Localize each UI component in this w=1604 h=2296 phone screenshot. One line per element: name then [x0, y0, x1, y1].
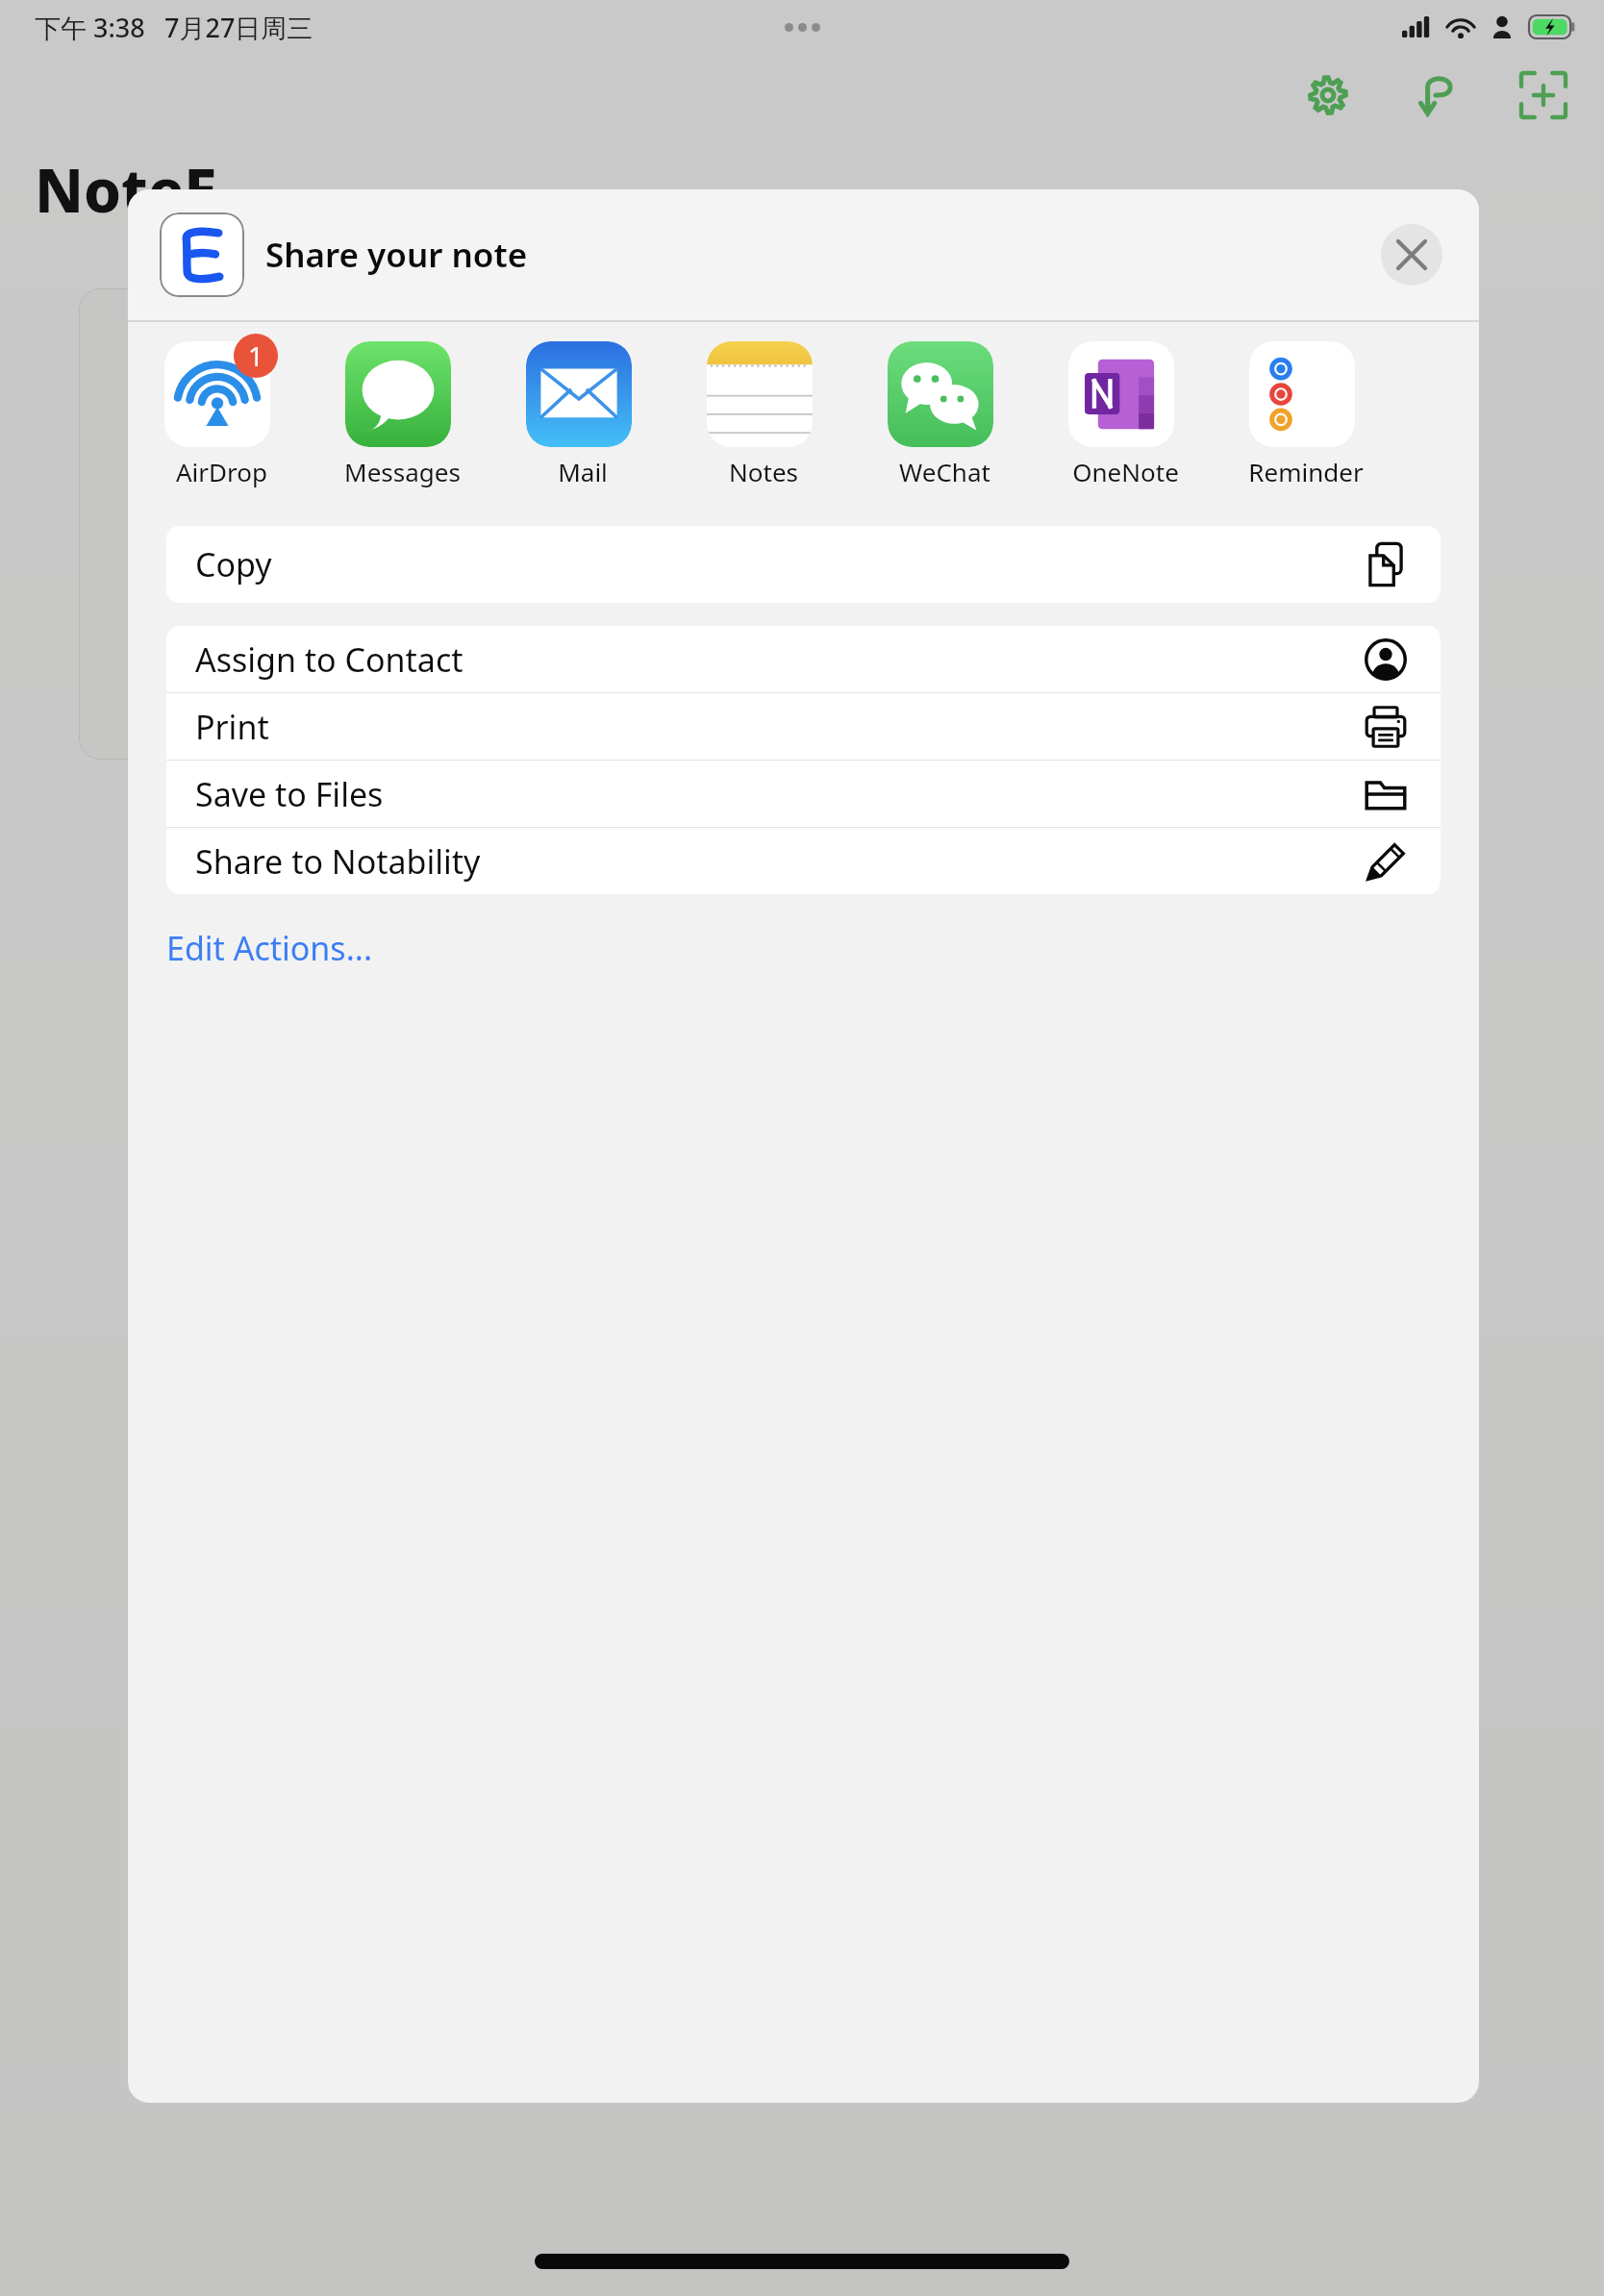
button[interactable]: Undo [1406, 65, 1466, 125]
button[interactable]: Share to Notability [166, 828, 1441, 894]
button[interactable]: Close [1381, 224, 1442, 286]
staticText: Edit Actions... [166, 926, 372, 970]
staticText: Assign to Contact [195, 637, 464, 682]
button[interactable]: Edit Actions... [166, 919, 372, 977]
staticText: Reminders [1245, 455, 1366, 488]
staticText: Mail [558, 455, 608, 488]
staticText: 7月27日周三 [164, 10, 313, 45]
staticText: Print [195, 705, 269, 749]
staticText: WeChat [899, 455, 990, 488]
button[interactable]: Notes [703, 322, 824, 488]
staticText: 1 [248, 337, 264, 374]
button[interactable]: 1 [161, 322, 282, 488]
button[interactable]: Add [1514, 65, 1573, 125]
button[interactable]: Mail [522, 322, 643, 488]
button[interactable]: Reminders [1245, 322, 1366, 488]
staticText: Share your note [265, 232, 528, 278]
button[interactable]: Print [166, 693, 1441, 760]
staticText: OneNote [1072, 455, 1179, 488]
button[interactable]: Messages [341, 322, 463, 488]
staticText: Messages [344, 455, 461, 488]
button[interactable]: WeChat [884, 322, 1005, 488]
staticText: AirDrop [176, 455, 267, 488]
staticText: Notes [729, 455, 798, 488]
button[interactable]: Save to Files [166, 761, 1441, 827]
staticText: Copy [195, 542, 272, 586]
staticText: Share to Notability [195, 839, 481, 884]
button[interactable]: OneNote [1065, 322, 1186, 488]
staticText: Save to Files [195, 772, 384, 816]
button[interactable]: Settings [1298, 65, 1358, 125]
staticText: NoteE [35, 149, 217, 230]
button[interactable]: Assign to Contact [166, 626, 1441, 692]
staticText: 下午 3:38 [35, 10, 145, 45]
button[interactable]: Copy [166, 526, 1441, 603]
